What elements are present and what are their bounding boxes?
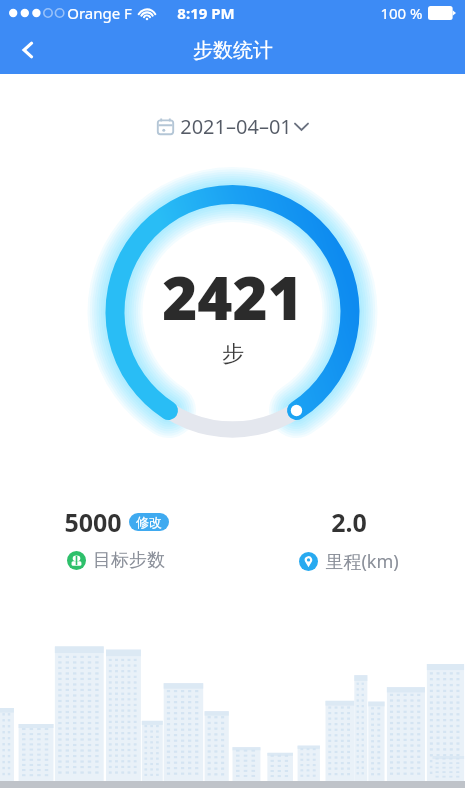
staticText: 2021–04–01: [180, 113, 292, 140]
staticText: 修改: [136, 514, 162, 530]
staticText: 目标步数: [93, 549, 165, 572]
staticText: Orange F: [67, 3, 132, 23]
button[interactable]: 修改: [129, 513, 169, 531]
button[interactable]: 2.0: [232, 505, 465, 574]
button[interactable]: 2021–04–01: [153, 110, 312, 143]
staticText: 里程(km): [325, 549, 399, 574]
button[interactable]: Back: [6, 28, 50, 72]
button[interactable]: 5000: [0, 505, 232, 572]
staticText: 5000: [64, 505, 122, 539]
staticText: 8:19 PM: [177, 3, 235, 23]
staticText: 步数统计: [193, 38, 273, 63]
staticText: 2.0: [331, 505, 367, 539]
staticText: 步: [222, 340, 244, 368]
staticText: 2421: [162, 256, 303, 338]
staticText: 100 %: [380, 3, 423, 23]
